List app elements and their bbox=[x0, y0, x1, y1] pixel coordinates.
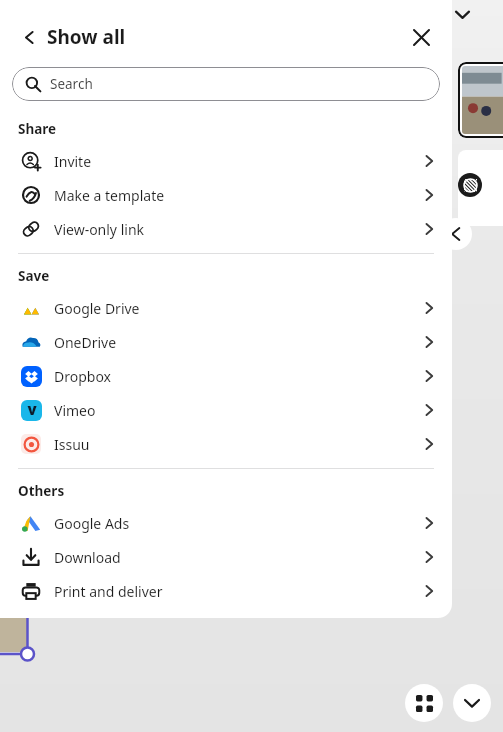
staticText: Search bbox=[50, 75, 93, 93]
button[interactable]: Print and deliver bbox=[0, 574, 452, 608]
button[interactable]: Invite bbox=[0, 144, 452, 178]
staticText: Invite bbox=[54, 152, 92, 171]
button[interactable]: Expand bbox=[448, 0, 476, 28]
button[interactable]: Hide panel bbox=[453, 684, 491, 722]
button[interactable]: Collapse panel bbox=[440, 218, 472, 250]
button[interactable]: Google Ads bbox=[0, 506, 452, 540]
staticText: Save bbox=[18, 267, 50, 285]
button[interactable]: Google Drive bbox=[0, 291, 452, 325]
button[interactable]: Search bbox=[12, 67, 440, 101]
staticText: Share bbox=[18, 120, 57, 138]
button[interactable]: Back bbox=[14, 22, 44, 52]
button[interactable]: OneDrive bbox=[0, 325, 452, 359]
staticText: Google Ads bbox=[54, 514, 130, 533]
staticText: Print and deliver bbox=[54, 582, 163, 601]
button[interactable]: Make a template bbox=[0, 178, 452, 212]
staticText: Others bbox=[18, 482, 65, 500]
staticText: Dropbox bbox=[54, 367, 112, 386]
staticText: Issuu bbox=[54, 435, 90, 454]
staticText: Download bbox=[54, 548, 121, 567]
button[interactable]: Close bbox=[404, 20, 438, 54]
button[interactable]: Grid view bbox=[405, 684, 443, 722]
button[interactable]: Dropbox bbox=[0, 359, 452, 393]
staticText: v bbox=[27, 400, 37, 419]
staticText: Google Drive bbox=[54, 299, 140, 318]
button[interactable]: Issuu bbox=[0, 427, 452, 461]
button[interactable]: View-only link bbox=[0, 212, 452, 246]
staticText: Vimeo bbox=[54, 401, 96, 420]
button[interactable]: Download bbox=[0, 540, 452, 574]
staticText: Show all bbox=[47, 24, 126, 50]
staticText: View-only link bbox=[54, 220, 145, 239]
staticText: OneDrive bbox=[54, 333, 117, 352]
staticText: Make a template bbox=[54, 186, 165, 205]
button[interactable]: v bbox=[0, 393, 452, 427]
